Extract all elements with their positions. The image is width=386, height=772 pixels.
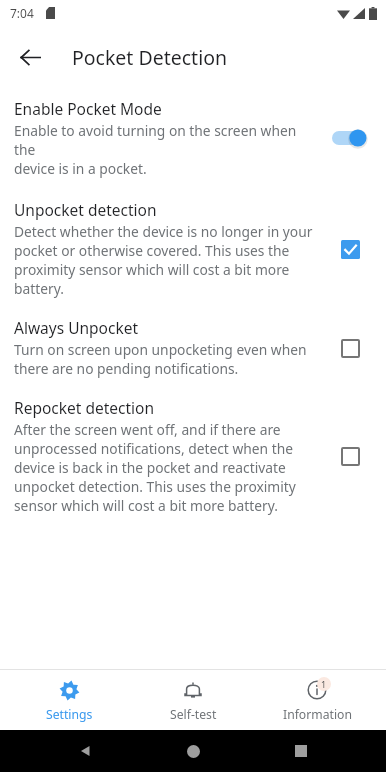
- button[interactable]: Enable Pocket Mode: [0, 88, 386, 190]
- button[interactable]: Repocket detection: [0, 388, 386, 525]
- staticText: Always Unpocket: [14, 317, 139, 338]
- staticText: Enable to avoid turning on the screen wh…: [14, 121, 320, 178]
- staticText: Unpocket detection: [14, 199, 157, 220]
- button[interactable]: Back: [64, 730, 108, 772]
- staticText: 7:04: [10, 5, 34, 21]
- staticText: Self-test: [170, 706, 217, 723]
- button[interactable]: Unchecked: [330, 436, 370, 476]
- button[interactable]: Unchecked: [330, 328, 370, 368]
- button[interactable]: Unpocket detection: [0, 190, 386, 308]
- staticText: After the screen went off, and if there …: [14, 420, 296, 515]
- staticText: Enable Pocket Mode: [14, 98, 162, 119]
- button[interactable]: Enable Pocket Mode toggle: [328, 123, 372, 153]
- button[interactable]: Home: [171, 730, 215, 772]
- staticText: 1: [321, 678, 327, 690]
- staticText: Repocket detection: [14, 397, 154, 418]
- button[interactable]: 1: [262, 677, 372, 723]
- staticText: Settings: [46, 706, 93, 723]
- button[interactable]: Settings: [14, 677, 124, 723]
- staticText: Detect whether the device is no longer i…: [14, 222, 313, 298]
- staticText: Pocket Detection: [72, 44, 228, 71]
- staticText: Information: [283, 706, 352, 723]
- button[interactable]: Always Unpocket: [0, 308, 386, 388]
- button[interactable]: Recent apps: [279, 730, 323, 772]
- staticText: Turn on screen upon unpocketing even whe…: [14, 340, 307, 378]
- button[interactable]: Self-test: [138, 677, 248, 723]
- button[interactable]: Back: [8, 35, 52, 79]
- button[interactable]: Checked: [330, 229, 370, 269]
